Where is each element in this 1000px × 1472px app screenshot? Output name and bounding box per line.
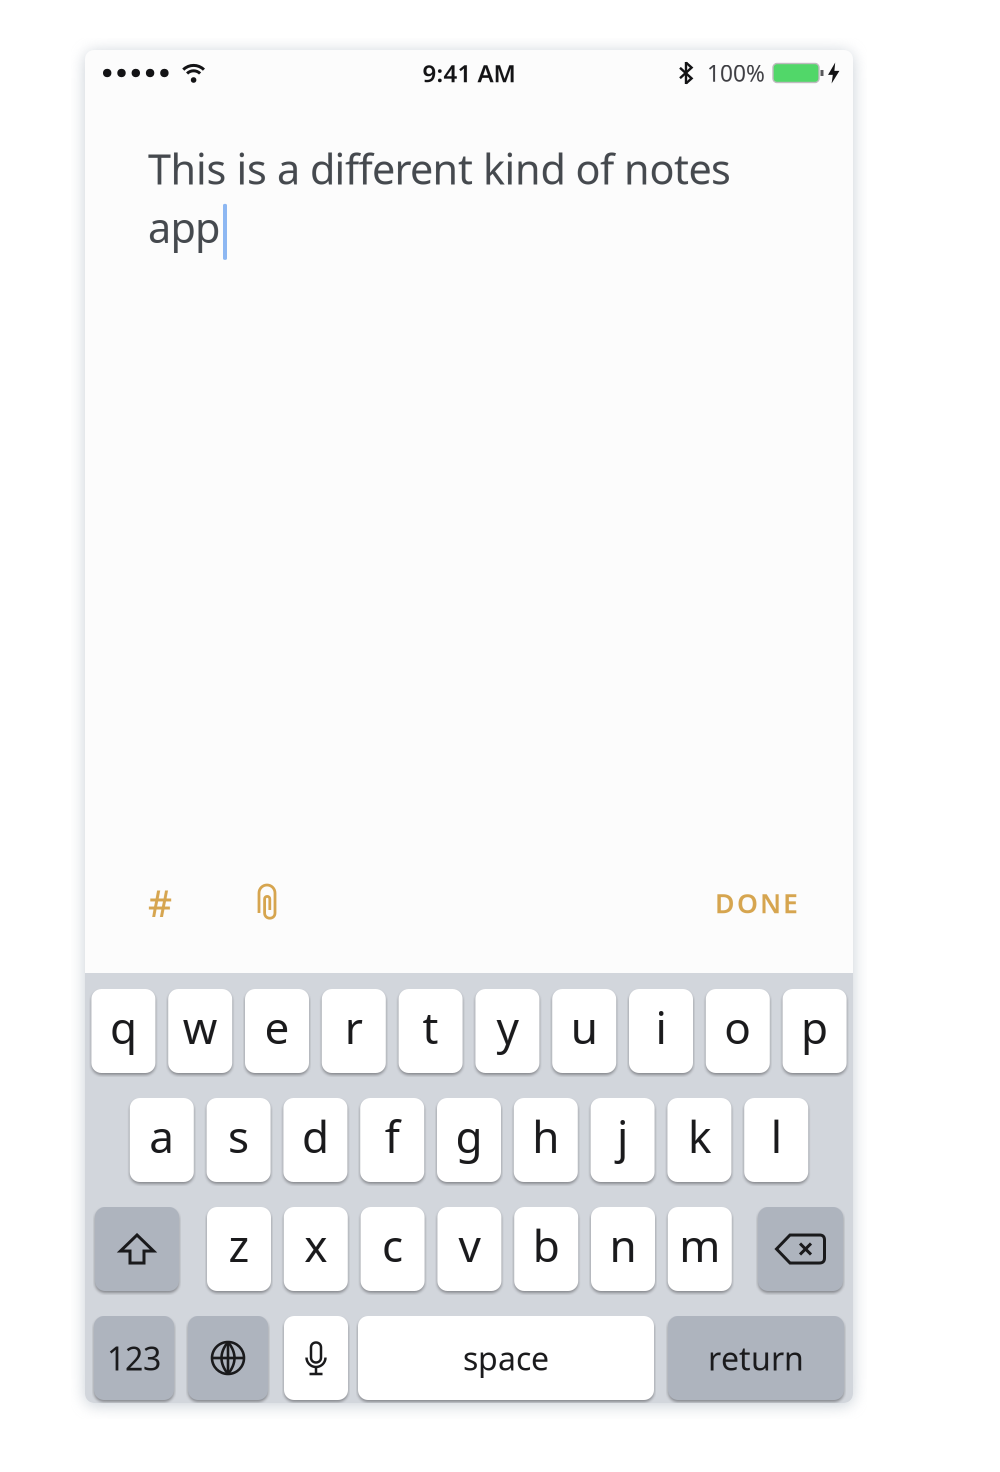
button[interactable]: n (591, 1207, 655, 1291)
button[interactable]: g (437, 1098, 501, 1182)
staticText: # (148, 878, 172, 928)
button[interactable]: Shift (95, 1207, 179, 1291)
button[interactable]: z (207, 1207, 271, 1291)
staticText: return (708, 1337, 804, 1379)
button[interactable]: m (668, 1207, 732, 1291)
button[interactable]: d (283, 1098, 347, 1182)
staticText: d (302, 1107, 329, 1165)
staticText: l (771, 1107, 782, 1165)
staticText: e (264, 998, 289, 1056)
button[interactable]: 123 (94, 1316, 174, 1400)
button[interactable]: o (706, 989, 770, 1073)
button[interactable]: h (514, 1098, 578, 1182)
button[interactable]: e (245, 989, 309, 1073)
button[interactable]: c (361, 1207, 425, 1291)
button[interactable]: Attach file (255, 883, 279, 923)
staticText: z (228, 1216, 249, 1274)
staticText: app (148, 199, 220, 254)
button[interactable]: Dictate (284, 1316, 348, 1400)
staticText: space (463, 1337, 549, 1379)
staticText: This is a different kind of notes (148, 141, 731, 196)
button[interactable]: Done (715, 885, 798, 921)
staticText: t (423, 998, 439, 1056)
button[interactable]: s (207, 1098, 271, 1182)
staticText: n (609, 1216, 636, 1274)
staticText: s (228, 1107, 249, 1165)
button[interactable]: b (514, 1207, 578, 1291)
button[interactable]: r (322, 989, 386, 1073)
staticText: g (455, 1107, 482, 1165)
staticText: k (688, 1107, 711, 1165)
staticText: w (183, 998, 218, 1056)
button[interactable]: j (591, 1098, 655, 1182)
staticText: 100% (707, 58, 765, 88)
staticText: c (382, 1216, 403, 1274)
staticText: 123 (107, 1337, 161, 1379)
button[interactable]: a (130, 1098, 194, 1182)
button[interactable]: w (168, 989, 232, 1073)
staticText: 9:41 AM (422, 57, 515, 89)
staticText: h (532, 1107, 559, 1165)
staticText: b (533, 1216, 560, 1274)
button[interactable]: t (399, 989, 463, 1073)
button[interactable]: x (284, 1207, 348, 1291)
staticText: x (304, 1216, 327, 1274)
button[interactable]: u (552, 989, 616, 1073)
staticText: o (724, 998, 751, 1056)
staticText: i (655, 998, 666, 1056)
button[interactable]: q (91, 989, 155, 1073)
button[interactable]: y (475, 989, 539, 1073)
button[interactable]: v (437, 1207, 501, 1291)
staticText: q (110, 998, 137, 1056)
button[interactable]: Delete (758, 1207, 843, 1291)
button[interactable]: Add tag (148, 878, 172, 928)
button[interactable]: Next keyboard (188, 1316, 268, 1400)
button[interactable]: p (783, 989, 847, 1073)
button[interactable]: space (358, 1316, 654, 1400)
staticText: r (345, 998, 363, 1056)
button[interactable]: l (744, 1098, 808, 1182)
staticText: DONE (715, 885, 798, 921)
staticText: a (149, 1107, 174, 1165)
staticText: f (385, 1107, 400, 1165)
button[interactable]: return (668, 1316, 844, 1400)
staticText: m (679, 1216, 720, 1274)
button[interactable]: i (629, 989, 693, 1073)
staticText: u (571, 998, 598, 1056)
staticText: p (801, 998, 828, 1056)
button[interactable]: k (667, 1098, 731, 1182)
staticText: y (496, 998, 518, 1056)
button[interactable]: f (360, 1098, 424, 1182)
staticText: v (458, 1216, 480, 1274)
staticText: j (617, 1107, 628, 1165)
